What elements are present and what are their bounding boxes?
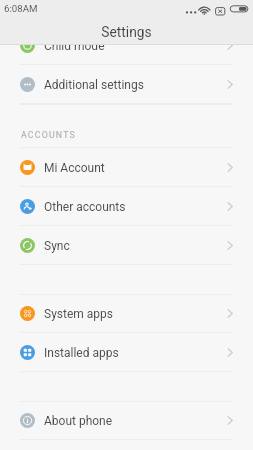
staticText: System apps [44,307,113,321]
button[interactable]: Installed apps [0,333,253,372]
staticText: ACCOUNTS [21,130,76,140]
button[interactable]: Other accounts [0,187,253,226]
staticText: Installed apps [44,346,119,360]
staticText: Sync [44,239,70,253]
button[interactable]: System apps [0,294,253,333]
button[interactable]: Additional settings [0,65,253,104]
staticText: Child mode [44,39,105,53]
button[interactable]: About phone [0,401,253,440]
staticText: 6:08AM [4,3,38,14]
staticText: Additional settings [44,78,144,92]
button[interactable]: Mi Account [0,148,253,187]
staticText: Other accounts [44,200,126,214]
button[interactable]: Sync [0,226,253,265]
button[interactable]: Child mode [0,26,253,65]
staticText: Settings [0,24,253,40]
staticText: Mi Account [44,161,105,175]
staticText: About phone [44,414,113,428]
